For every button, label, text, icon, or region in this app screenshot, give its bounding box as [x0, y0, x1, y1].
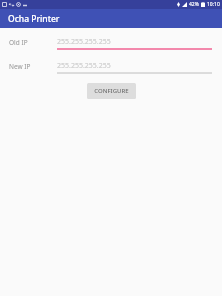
staticText: 255.255.255.255 [57, 37, 111, 47]
button[interactable]: Old IP [9, 37, 212, 50]
staticText: New IP [9, 62, 57, 71]
staticText: Ocha Printer [8, 13, 60, 25]
staticText: CONFIGURE [94, 87, 129, 95]
staticText: Old IP [9, 38, 57, 47]
button[interactable]: New IP [9, 61, 212, 74]
button[interactable]: CONFIGURE [87, 83, 136, 99]
staticText: 42% [189, 1, 199, 8]
staticText: 255.255.255.255 [57, 61, 111, 71]
staticText: 10:10 [207, 1, 220, 8]
